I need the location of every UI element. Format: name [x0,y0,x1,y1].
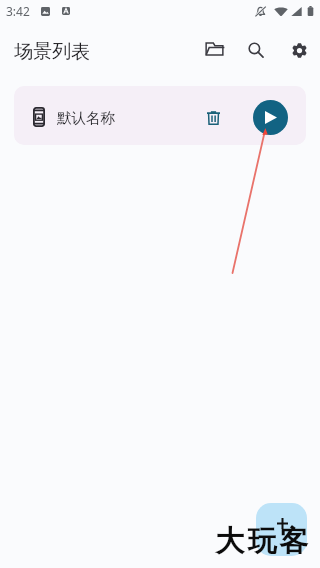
button[interactable]: Play scene [253,100,288,135]
button[interactable]: Delete scene [195,100,231,136]
button[interactable]: 默认名称 [14,86,306,145]
button[interactable]: Search [236,30,276,70]
staticText: 大玩客 [214,523,310,560]
staticText: 默认名称 [57,109,115,127]
button[interactable]: Open folder [194,29,234,69]
staticText: 场景列表 [14,40,90,64]
staticText: 3:42 [6,3,30,19]
button[interactable]: Settings [279,30,319,70]
